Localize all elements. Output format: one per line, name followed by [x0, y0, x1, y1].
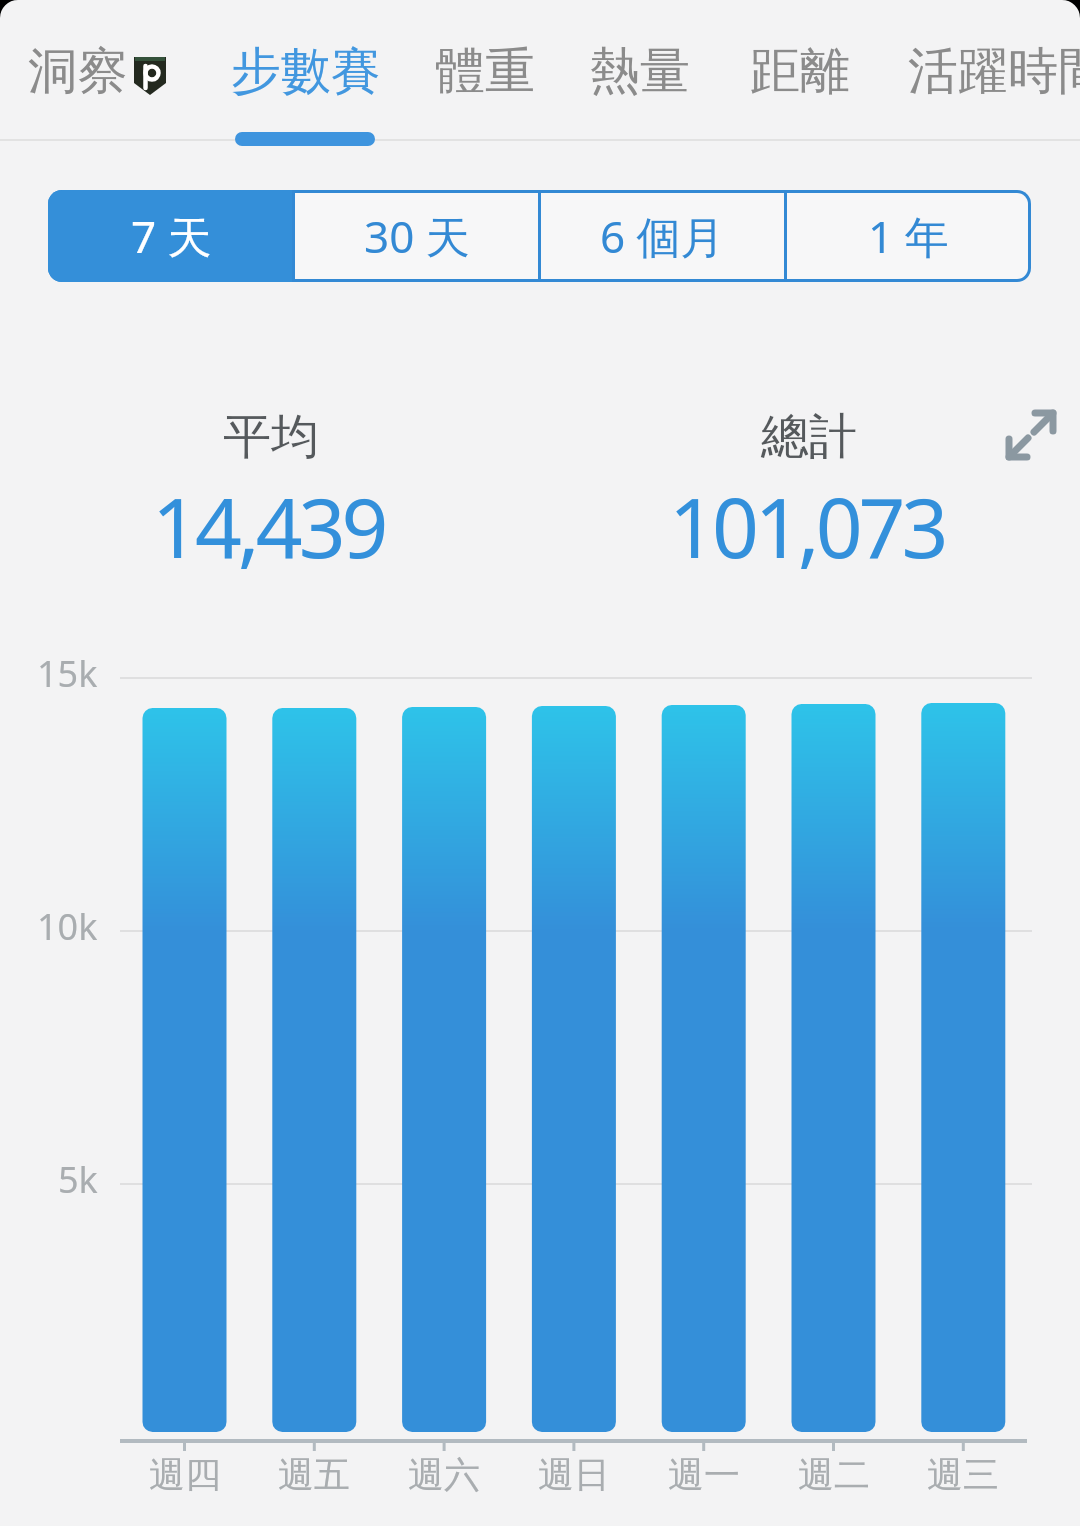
staticText: 體重	[435, 40, 535, 103]
staticText: 週一	[668, 1452, 740, 1497]
staticText: 1 年	[868, 206, 949, 266]
staticText: 週三	[927, 1452, 999, 1497]
button[interactable]: 步數賽	[206, 1, 406, 141]
button[interactable]	[48, 190, 294, 282]
staticText: 7 天	[131, 206, 212, 266]
staticText: 平均	[223, 407, 319, 467]
staticText: 101,073	[669, 470, 945, 582]
staticText: 步數賽	[231, 40, 381, 103]
staticText: 週日	[538, 1452, 610, 1497]
button[interactable]	[785, 190, 1031, 282]
staticText: 活躍時間	[908, 40, 1080, 103]
staticText: 15k	[37, 649, 98, 698]
button[interactable]	[1005, 409, 1057, 461]
button[interactable]	[540, 190, 786, 282]
staticText: 熱量	[590, 40, 690, 103]
staticText: 總計	[761, 407, 857, 467]
staticText: 洞察	[28, 40, 128, 103]
button[interactable]: 距離	[720, 1, 880, 141]
staticText: 6 個月	[600, 206, 725, 266]
staticText: 14,439	[152, 470, 385, 582]
staticText: 10k	[37, 902, 98, 951]
staticText: 週二	[798, 1452, 870, 1497]
button[interactable]: 體重	[405, 1, 565, 141]
staticText: 30 天	[364, 206, 470, 266]
button[interactable]: 熱量	[560, 1, 720, 141]
button[interactable]: 活躍時間	[908, 1, 1080, 141]
staticText: 距離	[750, 40, 850, 103]
button[interactable]	[294, 190, 540, 282]
staticText: 週四	[149, 1452, 221, 1497]
staticText: 5k	[58, 1155, 98, 1204]
staticText: 週五	[278, 1452, 350, 1497]
button[interactable]: 洞察	[0, 1, 158, 141]
staticText: 週六	[408, 1452, 480, 1497]
